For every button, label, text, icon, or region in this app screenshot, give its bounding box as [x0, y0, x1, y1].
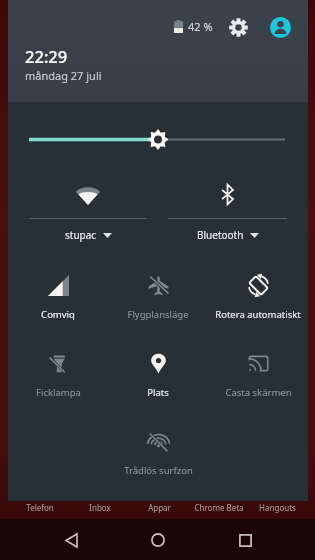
staticText: måndag 27 juli [25, 68, 102, 83]
button[interactable]: User profile [267, 14, 293, 40]
button[interactable]: Trådlös surfzon [108, 419, 208, 477]
staticText: Casta skärmen [225, 386, 292, 399]
staticText: Trådlös surfzon [124, 464, 193, 477]
button[interactable]: Casta skärmen [208, 341, 308, 399]
staticText: Inbox [89, 502, 111, 513]
staticText: Telefon [26, 502, 54, 513]
button[interactable]: Rotera automatiskt [208, 263, 308, 321]
staticText: Bluetooth [197, 228, 244, 242]
button[interactable]: Flygplansläge [108, 263, 208, 321]
staticText: Plats [147, 386, 169, 399]
button[interactable]: Plats [108, 341, 208, 399]
staticText: Chrome Beta [194, 502, 244, 513]
staticText: 42 % [188, 19, 213, 34]
button[interactable]: Comviq [8, 263, 108, 321]
button[interactable]: Inbox [70, 498, 130, 513]
button[interactable]: Ficklampa [8, 341, 108, 399]
button[interactable]: Recents [225, 520, 265, 560]
button[interactable]: Back [51, 520, 91, 560]
staticText: Hangouts [259, 502, 296, 513]
button[interactable]: Telefon [10, 498, 70, 513]
button[interactable]: Chrome Beta [189, 498, 248, 513]
staticText: Flygplansläge [127, 308, 189, 321]
button[interactable]: stupac [29, 174, 147, 242]
staticText: Rotera automatiskt [215, 308, 301, 321]
button[interactable]: Brightness [8, 102, 308, 162]
button[interactable]: Bluetooth [168, 174, 287, 242]
button[interactable]: Settings [225, 14, 251, 40]
button[interactable]: Appar [130, 498, 189, 513]
staticText: 22:29 [25, 45, 68, 67]
button[interactable]: Home [138, 520, 178, 560]
staticText: Ficklampa [36, 386, 81, 399]
staticText: stupac [65, 228, 97, 242]
staticText: Appar [148, 502, 171, 513]
staticText: Comviq [41, 308, 75, 321]
button[interactable]: Hangouts [248, 498, 307, 513]
